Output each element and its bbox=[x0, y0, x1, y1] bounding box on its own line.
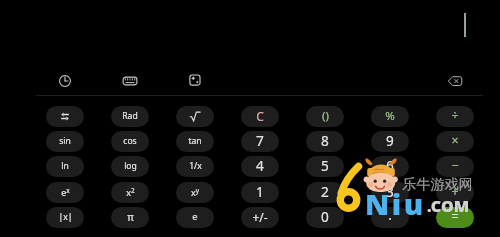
staticText: () bbox=[322, 108, 329, 124]
button[interactable]: AI assist bbox=[185, 70, 205, 90]
staticText: ÷ bbox=[451, 107, 459, 124]
staticText: 乐牛游戏网 bbox=[402, 175, 473, 193]
button[interactable]: log bbox=[111, 156, 149, 177]
button[interactable]: ÷ bbox=[436, 106, 474, 127]
staticText: 1/x bbox=[189, 160, 202, 172]
button[interactable]: () bbox=[306, 106, 344, 127]
button[interactable]: − bbox=[436, 156, 474, 177]
button[interactable]: 3 bbox=[371, 182, 409, 203]
button[interactable]: C bbox=[241, 106, 279, 127]
staticText: x2 bbox=[126, 186, 135, 198]
button[interactable]: +/- bbox=[241, 207, 279, 228]
button[interactable]: π bbox=[111, 207, 149, 228]
button[interactable]: 7 bbox=[241, 131, 279, 152]
staticText: C bbox=[256, 108, 264, 124]
staticText: % bbox=[385, 108, 395, 124]
button[interactable]: Keyboard bbox=[120, 71, 140, 91]
staticText: log bbox=[124, 160, 137, 172]
staticText: cos bbox=[123, 135, 137, 147]
staticText: 0 bbox=[321, 207, 329, 226]
staticText: = bbox=[451, 208, 459, 225]
staticText: sin bbox=[59, 135, 71, 147]
button[interactable]: 5 bbox=[306, 156, 344, 177]
staticText: 4 bbox=[256, 156, 264, 175]
staticText: 8 bbox=[321, 131, 329, 150]
button[interactable]: cos bbox=[111, 131, 149, 152]
staticText: π bbox=[127, 210, 134, 224]
button[interactable]: 1/x bbox=[176, 156, 214, 177]
staticText: + bbox=[451, 183, 459, 200]
staticText: tan bbox=[188, 135, 202, 147]
button[interactable]: Rad bbox=[111, 106, 149, 127]
button[interactable]: tan bbox=[176, 131, 214, 152]
staticText: Rad bbox=[122, 110, 138, 122]
button[interactable]: % bbox=[371, 106, 409, 127]
button[interactable]: 9 bbox=[371, 131, 409, 152]
staticText: ln bbox=[61, 160, 69, 172]
staticText: e bbox=[192, 210, 198, 223]
staticText: 5 bbox=[321, 156, 329, 175]
button[interactable]: Toggle inverse bbox=[46, 106, 84, 127]
button[interactable]: × bbox=[436, 131, 474, 152]
button[interactable]: 6 bbox=[371, 156, 409, 177]
button[interactable]: Backspace bbox=[445, 71, 465, 91]
staticText: +/- bbox=[252, 209, 268, 225]
button[interactable]: Square root bbox=[176, 106, 214, 127]
button[interactable]: ln bbox=[46, 156, 84, 177]
staticText: 3 bbox=[386, 182, 394, 201]
staticText: ex bbox=[61, 186, 70, 198]
button[interactable]: 1 bbox=[241, 182, 279, 203]
button[interactable]: 0 bbox=[306, 207, 344, 228]
staticText: 7 bbox=[256, 131, 264, 150]
button[interactable]: ex bbox=[46, 182, 84, 203]
button[interactable]: x2 bbox=[111, 182, 149, 203]
button[interactable]: 8 bbox=[306, 131, 344, 152]
staticText: 6 bbox=[386, 156, 394, 175]
button[interactable]: History bbox=[55, 71, 75, 91]
staticText: .COM bbox=[427, 195, 470, 217]
button[interactable]: = bbox=[436, 207, 474, 228]
staticText: 2 bbox=[321, 182, 329, 201]
button[interactable]: xy bbox=[176, 182, 214, 203]
button[interactable]: . bbox=[371, 207, 409, 228]
button[interactable]: sin bbox=[46, 131, 84, 152]
button[interactable]: e bbox=[176, 207, 214, 228]
staticText: − bbox=[451, 157, 459, 174]
staticText: . bbox=[388, 207, 392, 224]
staticText: xy bbox=[191, 186, 199, 198]
button[interactable]: 4 bbox=[241, 156, 279, 177]
staticText: |x| bbox=[58, 211, 73, 223]
button[interactable]: |x| bbox=[46, 207, 84, 228]
staticText: 1 bbox=[256, 182, 264, 201]
staticText: × bbox=[451, 132, 459, 149]
staticText: Niu bbox=[365, 184, 426, 223]
button[interactable]: + bbox=[436, 182, 474, 203]
staticText: 9 bbox=[386, 131, 394, 150]
button[interactable]: 2 bbox=[306, 182, 344, 203]
